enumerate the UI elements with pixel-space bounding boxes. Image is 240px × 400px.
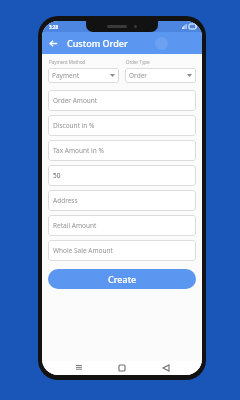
button[interactable]: Back — [159, 361, 173, 375]
staticText: Order Type — [126, 59, 150, 65]
staticText: Whole Sale Amount — [53, 246, 113, 255]
button[interactable]: Home — [115, 361, 129, 375]
staticText: Retail Amount — [53, 221, 97, 230]
button[interactable]: Address — [48, 190, 196, 211]
staticText: Create — [108, 273, 137, 285]
button[interactable]: Recent apps — [72, 361, 86, 375]
staticText: Payment — [52, 71, 110, 80]
staticText: Tax Amount in % — [53, 146, 104, 155]
staticText: Order — [129, 71, 187, 80]
button[interactable]: Create — [48, 269, 196, 289]
button[interactable]: Order Amount — [48, 90, 196, 111]
button[interactable]: Order — [125, 68, 196, 83]
button[interactable]: Back — [45, 35, 61, 51]
staticText: 3:28 — [49, 24, 58, 30]
button[interactable]: Discount in % — [48, 115, 196, 136]
button[interactable]: Whole Sale Amount — [48, 240, 196, 261]
button[interactable]: 50 — [48, 165, 196, 186]
staticText: Custom Order — [67, 37, 128, 49]
staticText: 50 — [53, 171, 61, 180]
button[interactable]: Retail Amount — [48, 215, 196, 236]
button[interactable]: Tax Amount in % — [48, 140, 196, 161]
staticText: Payment Method — [49, 59, 86, 65]
staticText: Discount in % — [53, 121, 95, 130]
button[interactable]: Payment — [48, 68, 119, 83]
staticText: Address — [53, 196, 78, 205]
staticText: Order Amount — [53, 96, 98, 105]
